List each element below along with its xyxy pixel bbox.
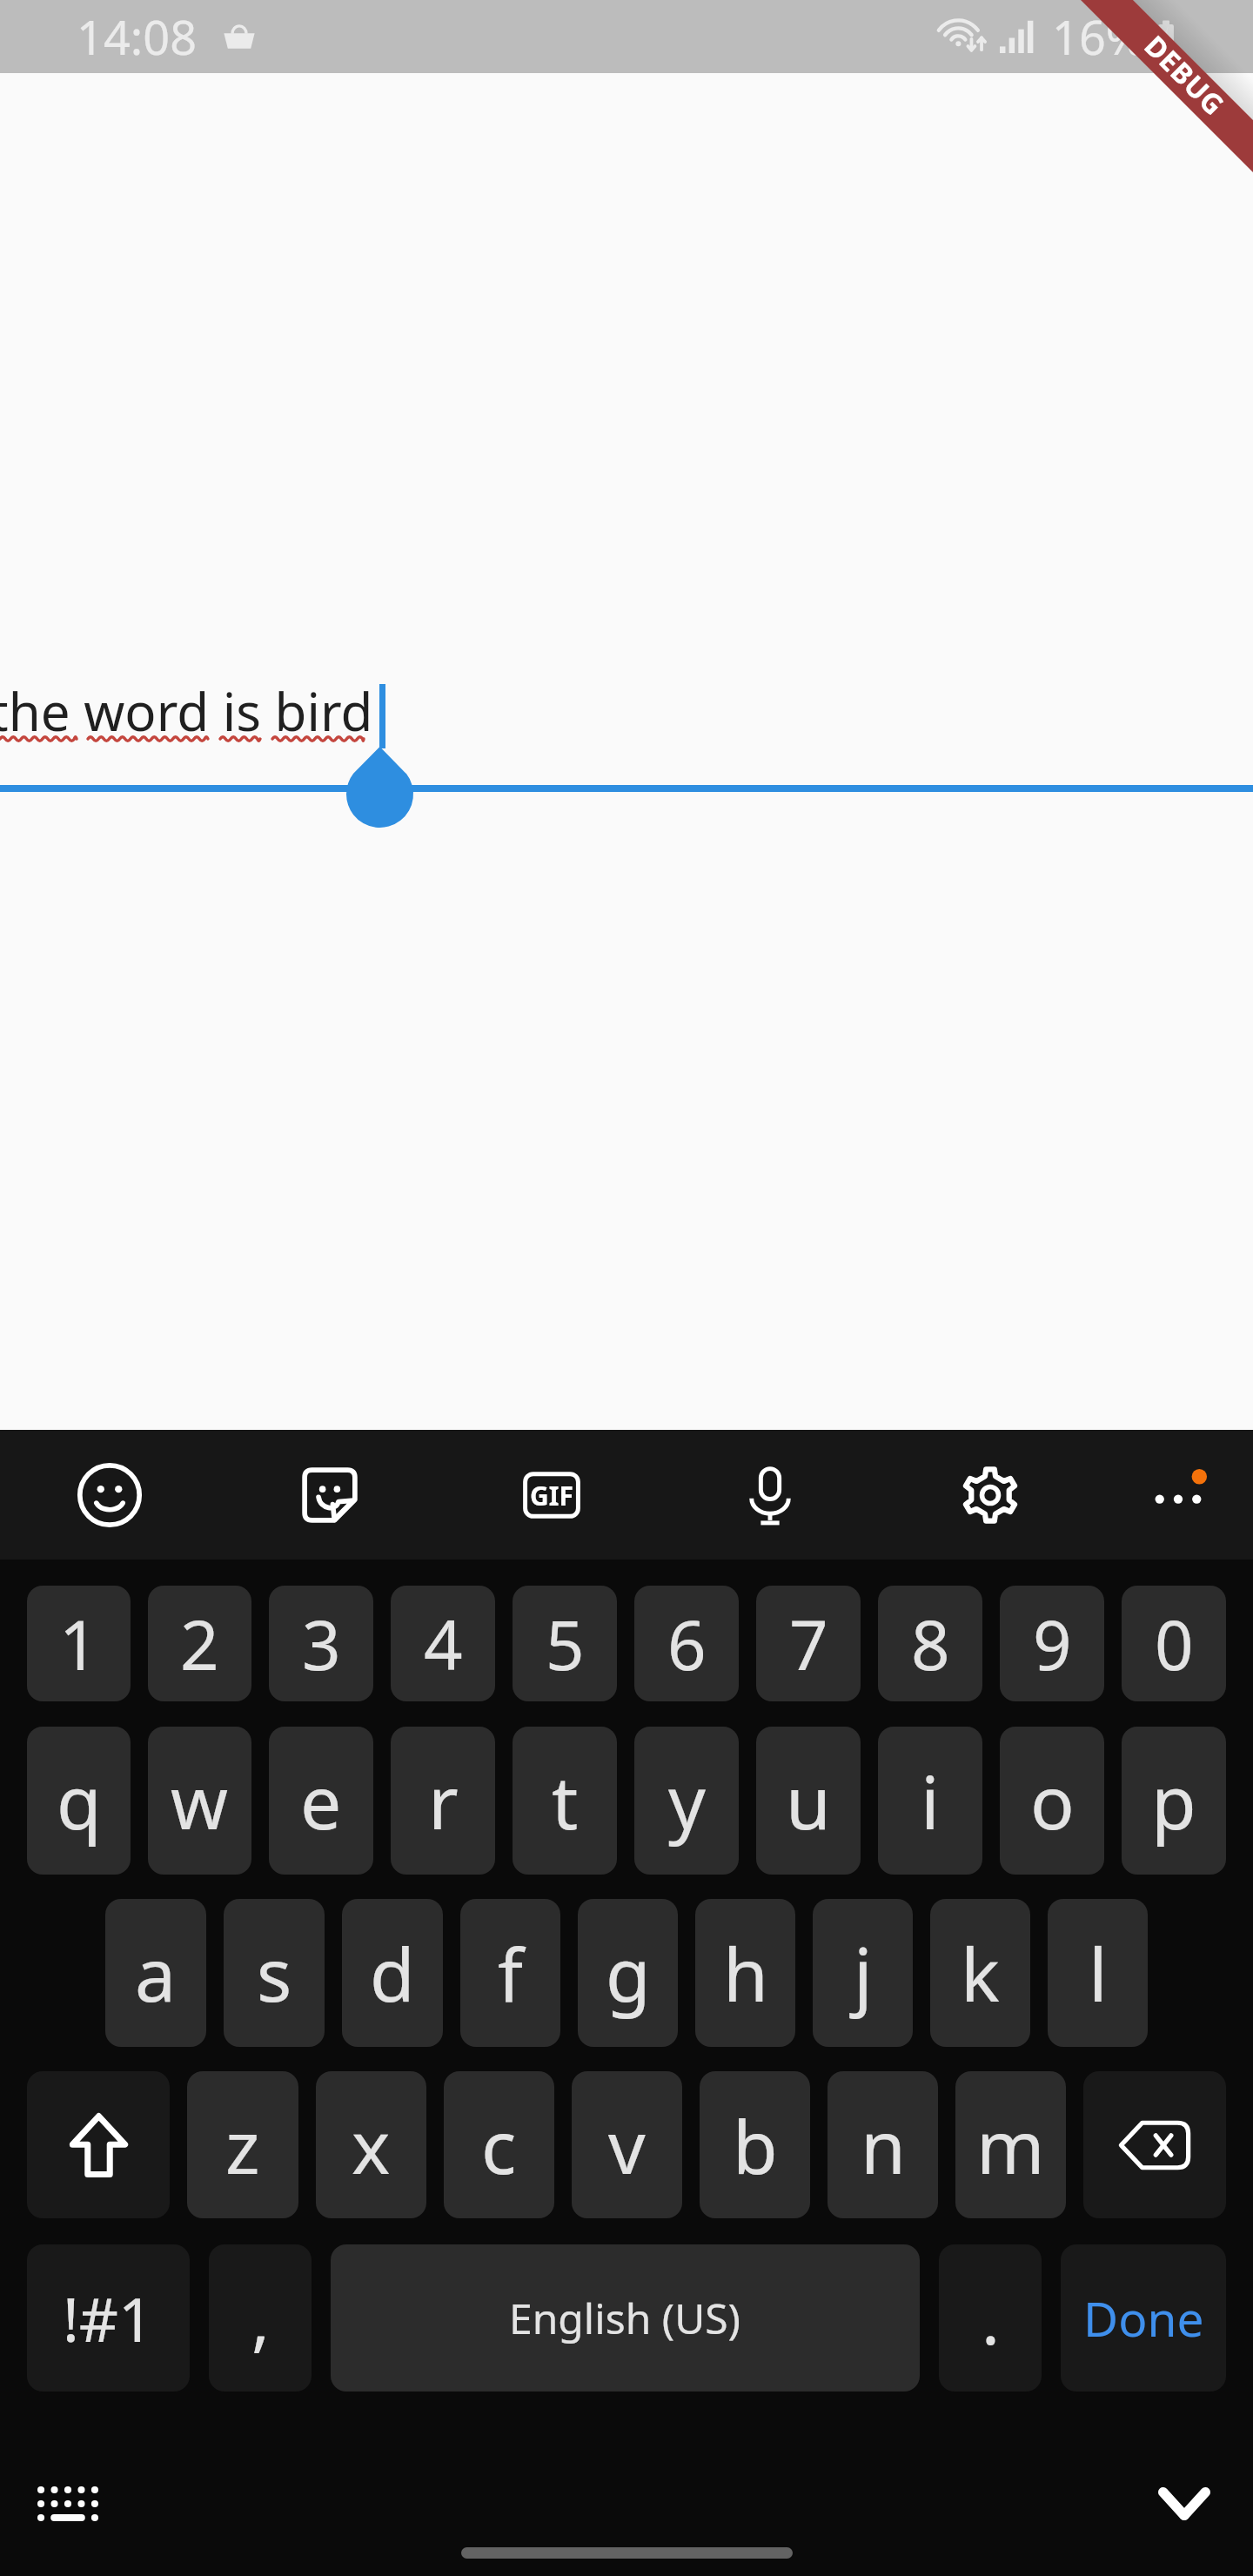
staticText: e <box>300 1751 342 1850</box>
button[interactable]: j <box>813 1899 913 2047</box>
staticText: o <box>1030 1751 1075 1850</box>
button[interactable]: b <box>700 2071 810 2218</box>
staticText: 16% <box>1052 4 1145 69</box>
staticText: 4 <box>424 1598 463 1690</box>
button[interactable]: r <box>391 1727 495 1875</box>
button[interactable]: Backspace <box>1083 2071 1226 2218</box>
staticText: the word is bird <box>0 675 373 747</box>
button[interactable]: e <box>269 1727 373 1875</box>
button[interactable]: y <box>634 1727 739 1875</box>
staticText: m <box>976 2096 1045 2195</box>
staticText: 6 <box>667 1598 707 1690</box>
button[interactable]: q <box>27 1727 131 1875</box>
staticText: 14:08 <box>77 4 198 69</box>
button[interactable]: 2 <box>148 1586 251 1701</box>
staticText: f <box>498 1923 523 2023</box>
button[interactable]: u <box>756 1727 861 1875</box>
staticText: 8 <box>911 1598 950 1690</box>
button[interactable]: 9 <box>1000 1586 1104 1701</box>
button[interactable]: Emoji <box>45 1439 174 1552</box>
staticText: l <box>1089 1923 1108 2023</box>
button[interactable]: w <box>148 1727 251 1875</box>
button[interactable]: GIF <box>487 1439 616 1552</box>
staticText: DEBUG <box>1136 27 1233 123</box>
button[interactable]: p <box>1122 1727 1226 1875</box>
staticText: a <box>135 1923 177 2023</box>
staticText: GIF <box>530 1478 573 1513</box>
staticText: d <box>370 1923 415 2023</box>
staticText: z <box>225 2096 260 2195</box>
button[interactable]: t <box>513 1727 617 1875</box>
button[interactable]: Settings <box>926 1439 1055 1552</box>
button[interactable]: c <box>444 2071 554 2218</box>
button[interactable]: n <box>828 2071 938 2218</box>
button[interactable]: More options <box>1114 1439 1243 1552</box>
staticText: c <box>481 2096 517 2195</box>
staticText: 1 <box>59 1598 98 1690</box>
button[interactable]: . <box>939 2244 1042 2392</box>
staticText: u <box>786 1751 831 1850</box>
button[interactable]: i <box>878 1727 982 1875</box>
button[interactable]: Shift <box>27 2071 170 2218</box>
staticText: 2 <box>180 1598 219 1690</box>
button[interactable]: 8 <box>878 1586 982 1701</box>
button[interactable]: a <box>105 1899 206 2047</box>
staticText: . <box>982 2272 1000 2365</box>
staticText: j <box>854 1923 873 2023</box>
staticText: t <box>552 1751 579 1850</box>
button[interactable]: v <box>572 2071 682 2218</box>
button[interactable]: f <box>460 1899 560 2047</box>
button[interactable]: h <box>695 1899 795 2047</box>
button[interactable]: 0 <box>1122 1586 1226 1701</box>
staticText: k <box>961 1923 1000 2023</box>
button[interactable]: 1 <box>27 1586 131 1701</box>
button[interactable]: d <box>342 1899 443 2047</box>
staticText: n <box>861 2096 906 2195</box>
button[interactable]: !#1 <box>27 2244 190 2392</box>
staticText: English (US) <box>509 2290 741 2346</box>
staticText: g <box>606 1923 651 2023</box>
button[interactable]: s <box>224 1899 325 2047</box>
staticText: q <box>57 1751 102 1850</box>
staticText: 3 <box>302 1598 341 1690</box>
staticText: v <box>608 2096 646 2195</box>
button[interactable]: Voice input <box>706 1439 834 1552</box>
staticText: y <box>668 1751 706 1850</box>
button[interactable]: 6 <box>634 1586 739 1701</box>
button[interactable]: Stickers <box>265 1439 394 1552</box>
button[interactable]: 4 <box>391 1586 495 1701</box>
staticText: r <box>428 1751 459 1850</box>
staticText: 0 <box>1155 1598 1194 1690</box>
staticText: w <box>171 1751 229 1850</box>
staticText: s <box>257 1923 292 2023</box>
staticText: 5 <box>546 1598 585 1690</box>
button[interactable]: 5 <box>513 1586 617 1701</box>
staticText: p <box>1151 1751 1196 1850</box>
staticText: Done <box>1083 2285 1204 2351</box>
staticText: !#1 <box>63 2277 154 2359</box>
staticText: x <box>352 2096 391 2195</box>
staticText: , <box>251 2272 270 2365</box>
staticText: h <box>723 1923 768 2023</box>
staticText: b <box>733 2096 778 2195</box>
button[interactable]: x <box>316 2071 426 2218</box>
button[interactable]: l <box>1048 1899 1148 2047</box>
button[interactable]: g <box>578 1899 678 2047</box>
staticText: 7 <box>789 1598 828 1690</box>
button[interactable]: m <box>955 2071 1066 2218</box>
staticText: i <box>921 1751 940 1850</box>
button[interactable]: , <box>209 2244 312 2392</box>
button[interactable]: o <box>1000 1727 1104 1875</box>
button[interactable]: k <box>930 1899 1030 2047</box>
button[interactable]: 7 <box>756 1586 861 1701</box>
button[interactable]: 3 <box>269 1586 373 1701</box>
button[interactable]: Done <box>1061 2244 1226 2392</box>
button[interactable]: Change keyboard <box>30 2465 106 2542</box>
staticText: 9 <box>1033 1598 1072 1690</box>
button[interactable]: Hide keyboard <box>1146 2465 1223 2542</box>
button[interactable]: z <box>187 2071 298 2218</box>
button[interactable]: English (US) <box>331 2244 920 2392</box>
